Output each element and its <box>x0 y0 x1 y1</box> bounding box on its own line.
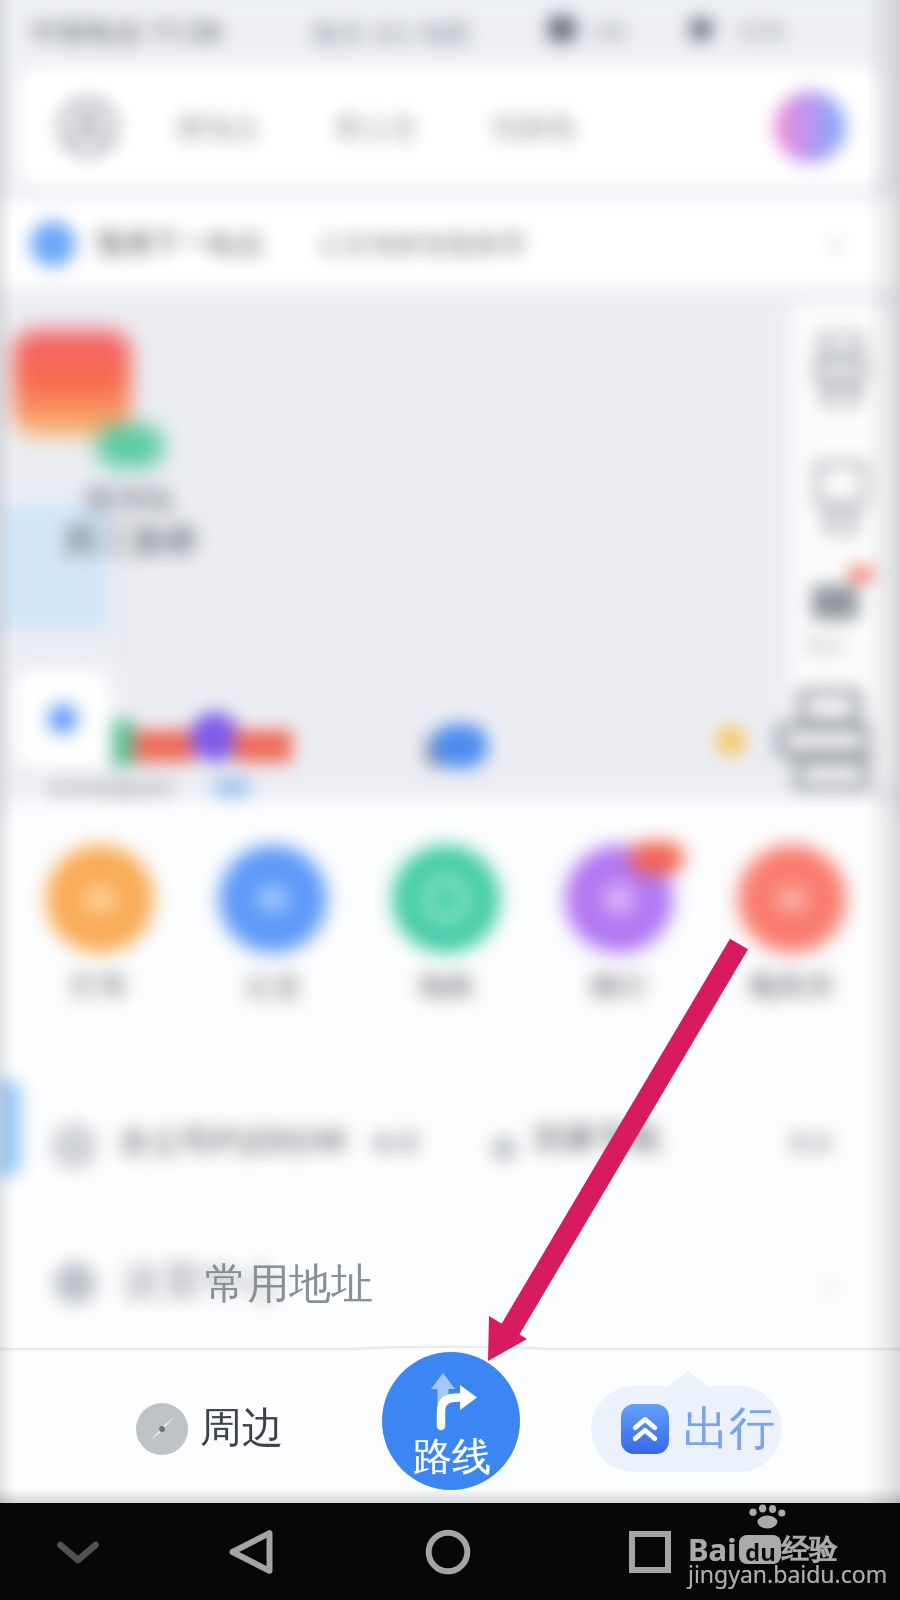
staticText: 周边 <box>200 1402 284 1455</box>
staticText: 顺风车 <box>749 968 836 1005</box>
staticText: 搜地点 <box>176 110 260 145</box>
staticText: 北京市海淀区 <box>48 778 174 804</box>
staticText: 查公交 <box>334 110 418 145</box>
staticText: 畅通 <box>372 1128 420 1158</box>
button[interactable]: 周边 <box>136 1402 284 1455</box>
button[interactable] <box>738 845 846 953</box>
staticText: 中国电信 11:34 <box>30 12 221 50</box>
staticText: 打车 <box>71 968 129 1005</box>
staticText: 出行 <box>683 1400 775 1458</box>
staticText: 去公司约23分钟 <box>118 1118 347 1162</box>
button[interactable]: 预测下一站点 <box>0 200 900 288</box>
staticText: 微信 QQ 地图 <box>312 14 471 50</box>
staticText: 回家导航 <box>534 1118 662 1158</box>
staticText: 常用地址 <box>205 1258 373 1311</box>
staticText: HD <box>592 14 628 47</box>
button[interactable]: Hide keyboard <box>28 1503 128 1600</box>
staticText: 骑行 <box>590 968 648 1005</box>
button[interactable]: 路线 <box>382 1352 520 1490</box>
button[interactable]: Back <box>201 1503 301 1600</box>
staticText: 设置中心 <box>122 1256 282 1306</box>
staticText: 地铁 <box>417 968 475 1005</box>
staticText: jingyan.baidu.com <box>688 1558 888 1589</box>
button[interactable]: Recents <box>600 1503 700 1600</box>
button[interactable]: Home <box>398 1503 498 1600</box>
staticText: 清河站 <box>82 480 175 519</box>
staticText: 找路线 <box>492 110 576 145</box>
button[interactable]: 设置中心 <box>0 1228 900 1340</box>
staticText: 经验 <box>781 1532 837 1567</box>
button[interactable] <box>591 1386 782 1472</box>
button[interactable]: 去公司约23分钟 <box>0 1094 900 1194</box>
staticText: 西三旗桥 <box>64 519 200 562</box>
button[interactable] <box>565 845 673 953</box>
staticText: 预测下一站点 <box>96 226 264 261</box>
button[interactable] <box>219 845 327 953</box>
staticText: du <box>745 1535 776 1564</box>
staticText: 公交 <box>244 968 302 1005</box>
staticText: Bai <box>688 1528 737 1570</box>
staticText: 更多 <box>788 1128 836 1158</box>
button[interactable] <box>392 845 500 953</box>
staticText: 路线 <box>413 1432 491 1481</box>
button[interactable] <box>46 845 154 953</box>
staticText: 52% <box>738 14 786 47</box>
staticText: 公交地铁智能推荐 <box>318 228 526 261</box>
button[interactable]: 搜地点 <box>18 66 882 186</box>
